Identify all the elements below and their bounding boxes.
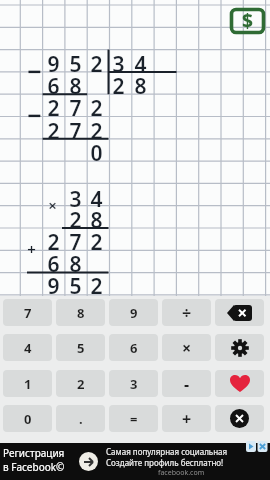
button[interactable]: . [56,405,105,432]
staticText: 8 [90,206,103,228]
staticText: 2 [90,50,103,72]
staticText: 4 [24,339,32,357]
staticText: 2 [47,228,60,250]
staticText: 5 [69,50,82,72]
button[interactable]: $ [230,8,265,34]
staticText: 5 [69,272,82,294]
button[interactable]: 3 [109,370,158,397]
button[interactable]: - [162,370,211,397]
staticText: 4 [90,185,103,207]
button[interactable] [215,370,264,397]
button[interactable]: 4 [3,334,52,361]
staticText: × [48,195,57,215]
staticText: 6 [47,250,60,272]
staticText: 2 [90,228,103,250]
staticText: 7 [69,228,82,250]
button[interactable]: 6 [109,334,158,361]
staticText: 4 [134,50,147,72]
staticText: = [130,410,138,428]
staticText: Самая популярная социальная [106,446,228,457]
staticText: . [79,410,83,428]
staticText: 2 [77,375,85,393]
staticText: 2 [90,94,103,116]
button[interactable]: 2 [56,370,105,397]
staticText: Регистрация [3,446,65,460]
staticText: 7 [69,94,82,116]
staticText: 1 [24,375,32,393]
button[interactable] [215,334,264,361]
staticText: 7 [69,117,82,139]
staticText: 2 [90,117,103,139]
staticText: Создайте профиль бесплатно! [106,457,224,468]
staticText: 8 [69,250,82,272]
button[interactable]: = [109,405,158,432]
staticText: 5 [77,339,85,357]
staticText: - [184,373,190,395]
staticText: 2 [90,272,103,294]
staticText: $ [242,8,253,34]
button[interactable]: × [162,334,211,361]
staticText: × [182,337,192,359]
button[interactable]: 0 [3,405,52,432]
staticText: ÷ [182,302,192,324]
staticText: 8 [77,304,85,322]
button[interactable] [215,299,264,326]
staticText: 2 [47,117,60,139]
staticText: 3 [130,375,138,393]
button[interactable]: ÷ [162,299,211,326]
staticText: 9 [47,272,60,294]
button[interactable] [215,405,264,432]
staticText: 3 [69,185,82,207]
staticText: 3 [112,50,125,72]
button[interactable]: 1 [3,370,52,397]
button[interactable]: Регистрация [0,443,270,480]
staticText: 0 [24,410,32,428]
button[interactable]: 5 [56,334,105,361]
staticText: 6 [130,339,138,357]
staticText: 2 [69,206,82,228]
staticText: 2 [112,72,125,94]
staticText: + [27,239,36,259]
staticText: 7 [24,304,32,322]
button[interactable]: 7 [3,299,52,326]
staticText: + [182,408,192,430]
staticText: 2 [47,94,60,116]
staticText: 8 [134,72,147,94]
staticText: 9 [47,50,60,72]
button[interactable]: 9 [109,299,158,326]
button[interactable]: 8 [56,299,105,326]
staticText: 6 [47,72,60,94]
staticText: facebook.com [158,468,205,478]
button[interactable]: + [162,405,211,432]
staticText: в Facebook© [3,460,65,474]
staticText: 8 [69,72,82,94]
staticText: 9 [130,304,138,322]
staticText: 0 [90,139,103,161]
